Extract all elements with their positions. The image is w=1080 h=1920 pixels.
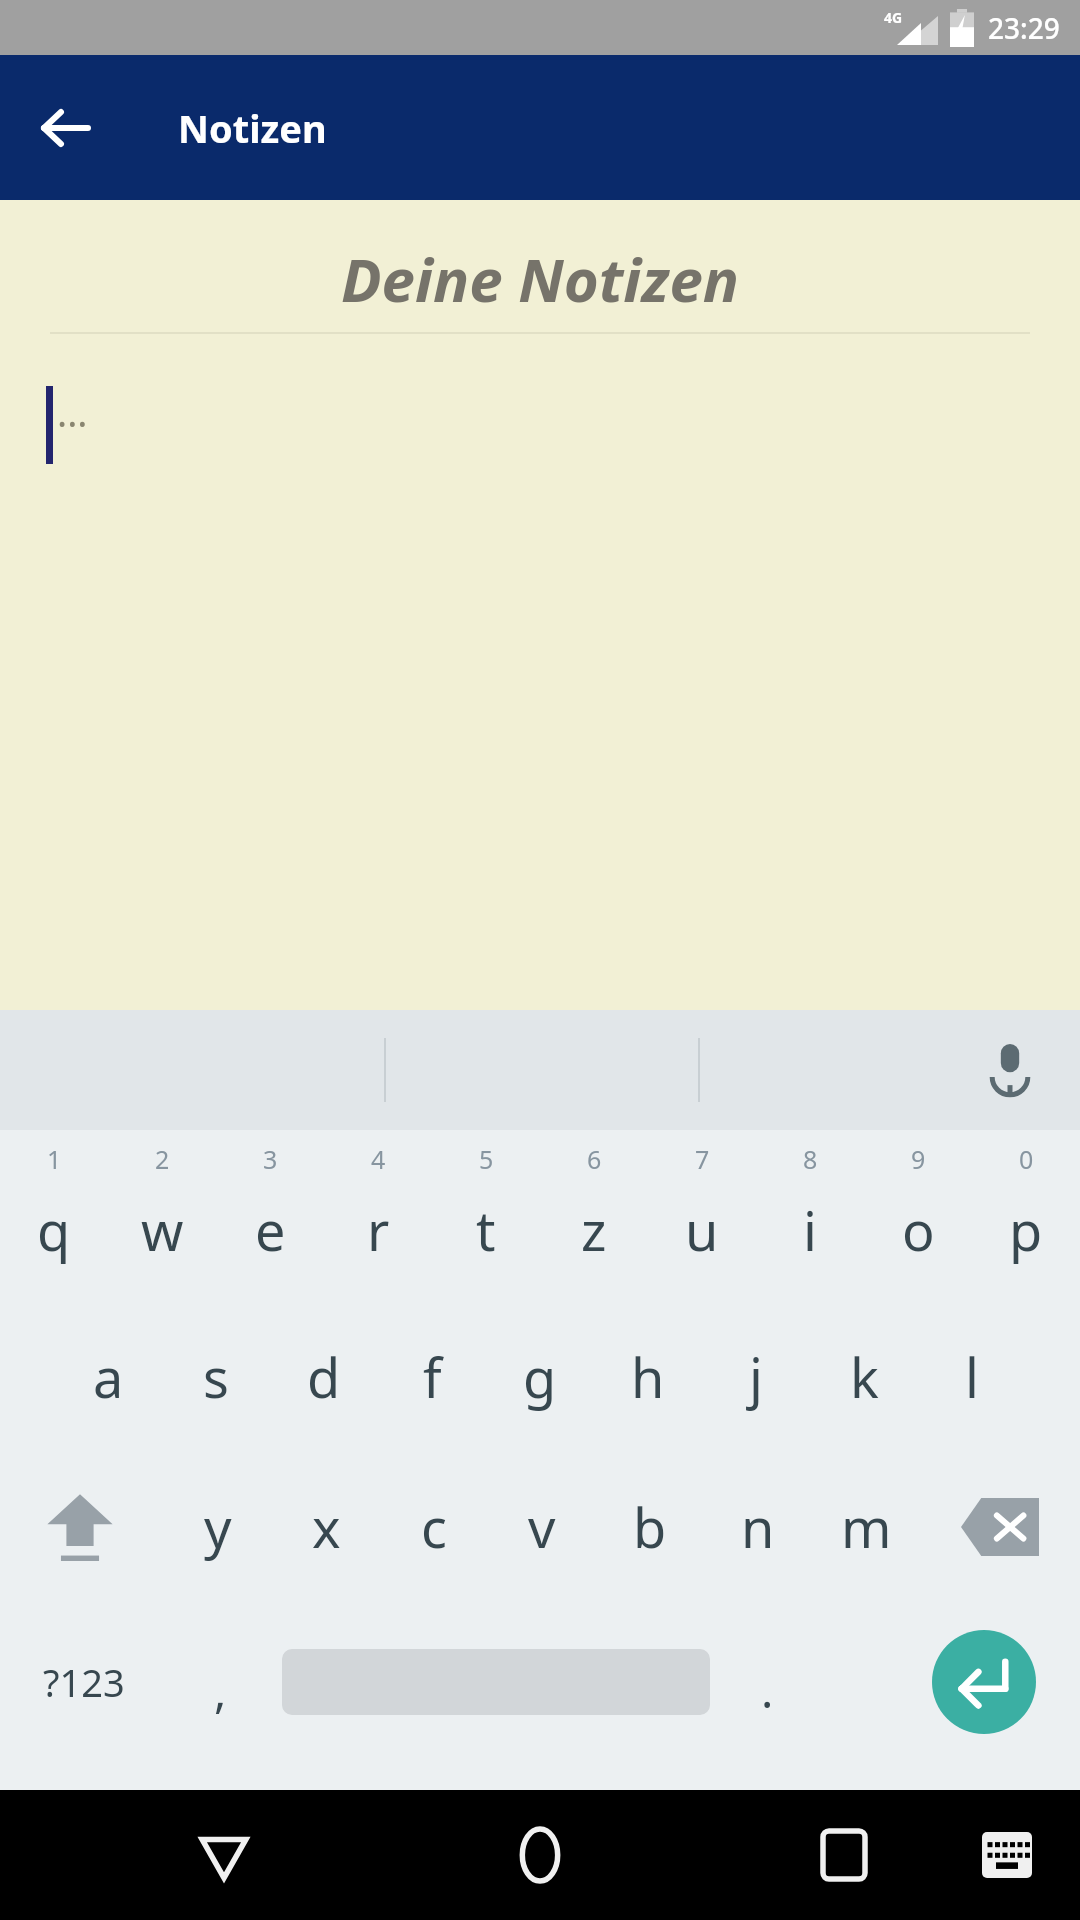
staticText: ?123 bbox=[43, 1656, 125, 1708]
staticText: s bbox=[203, 1340, 229, 1414]
button[interactable]: Recent apps bbox=[798, 1809, 890, 1901]
staticText: t bbox=[476, 1193, 496, 1267]
button[interactable]: Voice input bbox=[970, 1030, 1050, 1110]
button[interactable]: 5 bbox=[432, 1130, 540, 1302]
staticText: q bbox=[37, 1193, 71, 1267]
staticText: 5 bbox=[479, 1142, 494, 1176]
button[interactable]: Backspace bbox=[920, 1452, 1080, 1602]
staticText: 4 bbox=[371, 1142, 386, 1176]
button[interactable]: 6 bbox=[540, 1130, 648, 1302]
staticText: 3 bbox=[263, 1142, 278, 1176]
staticText: Notizen bbox=[178, 102, 327, 154]
staticText: w bbox=[141, 1193, 184, 1267]
staticText: ... bbox=[57, 386, 88, 438]
button[interactable]: k bbox=[810, 1302, 918, 1452]
staticText: . bbox=[761, 1659, 774, 1722]
staticText: e bbox=[255, 1193, 286, 1267]
button[interactable]: c bbox=[380, 1452, 488, 1602]
button[interactable]: b bbox=[596, 1452, 704, 1602]
staticText: h bbox=[631, 1340, 665, 1414]
button[interactable]: n bbox=[704, 1452, 812, 1602]
staticText: r bbox=[367, 1193, 390, 1267]
staticText: 9 bbox=[911, 1142, 926, 1176]
staticText: 6 bbox=[587, 1142, 602, 1176]
staticText: f bbox=[423, 1340, 442, 1414]
staticText: g bbox=[523, 1340, 557, 1414]
button[interactable]: Home bbox=[494, 1809, 586, 1901]
button[interactable]: Deine Notizen bbox=[0, 200, 1080, 1010]
staticText: a bbox=[93, 1340, 124, 1414]
staticText: 1 bbox=[47, 1142, 62, 1176]
button[interactable]: Shift bbox=[0, 1452, 160, 1602]
button[interactable]: g bbox=[486, 1302, 594, 1452]
button[interactable]: m bbox=[812, 1452, 920, 1602]
staticText: k bbox=[850, 1340, 879, 1414]
staticText: j bbox=[749, 1340, 763, 1414]
button[interactable]: . bbox=[712, 1602, 822, 1762]
button[interactable]: ?123 bbox=[0, 1602, 168, 1762]
staticText: 8 bbox=[803, 1142, 818, 1176]
staticText: i bbox=[803, 1193, 817, 1267]
button[interactable]: Back bbox=[178, 1809, 270, 1901]
button[interactable]: 4 bbox=[324, 1130, 432, 1302]
button[interactable]: v bbox=[488, 1452, 596, 1602]
staticText: u bbox=[685, 1193, 719, 1267]
staticText: 0 bbox=[1019, 1142, 1034, 1176]
staticText: y bbox=[204, 1490, 232, 1564]
button[interactable]: 9 bbox=[864, 1130, 972, 1302]
staticText: o bbox=[902, 1193, 935, 1267]
button[interactable]: Back bbox=[22, 84, 110, 172]
staticText: c bbox=[421, 1490, 447, 1564]
staticText: d bbox=[307, 1340, 341, 1414]
button[interactable]: 1 bbox=[0, 1130, 108, 1302]
button[interactable]: 3 bbox=[216, 1130, 324, 1302]
button[interactable]: h bbox=[594, 1302, 702, 1452]
staticText: n bbox=[741, 1490, 775, 1564]
button[interactable]: a bbox=[54, 1302, 162, 1452]
button[interactable]: 0 bbox=[972, 1130, 1080, 1302]
staticText: 4G bbox=[884, 8, 903, 27]
staticText: Deine Notizen bbox=[0, 238, 1080, 320]
button[interactable]: 2 bbox=[108, 1130, 216, 1302]
button[interactable]: f bbox=[378, 1302, 486, 1452]
button[interactable]: j bbox=[702, 1302, 810, 1452]
button[interactable]: 8 bbox=[756, 1130, 864, 1302]
staticText: 2 bbox=[155, 1142, 170, 1176]
button[interactable]: Switch keyboard bbox=[968, 1816, 1046, 1894]
button[interactable]: s bbox=[162, 1302, 270, 1452]
staticText: 7 bbox=[695, 1142, 710, 1176]
staticText: , bbox=[214, 1659, 227, 1722]
staticText: v bbox=[528, 1490, 556, 1564]
button[interactable]: l bbox=[918, 1302, 1026, 1452]
button[interactable]: , bbox=[160, 1602, 280, 1762]
button[interactable]: d bbox=[270, 1302, 378, 1452]
staticText: m bbox=[841, 1490, 892, 1564]
staticText: l bbox=[965, 1340, 979, 1414]
staticText: b bbox=[633, 1490, 667, 1564]
button[interactable]: 7 bbox=[648, 1130, 756, 1302]
button[interactable]: x bbox=[272, 1452, 380, 1602]
staticText: 23:29 bbox=[988, 9, 1060, 47]
button[interactable]: y bbox=[164, 1452, 272, 1602]
button[interactable]: Enter bbox=[932, 1630, 1036, 1734]
staticText: x bbox=[312, 1490, 341, 1564]
staticText: z bbox=[581, 1193, 607, 1267]
staticText: p bbox=[1009, 1193, 1043, 1267]
